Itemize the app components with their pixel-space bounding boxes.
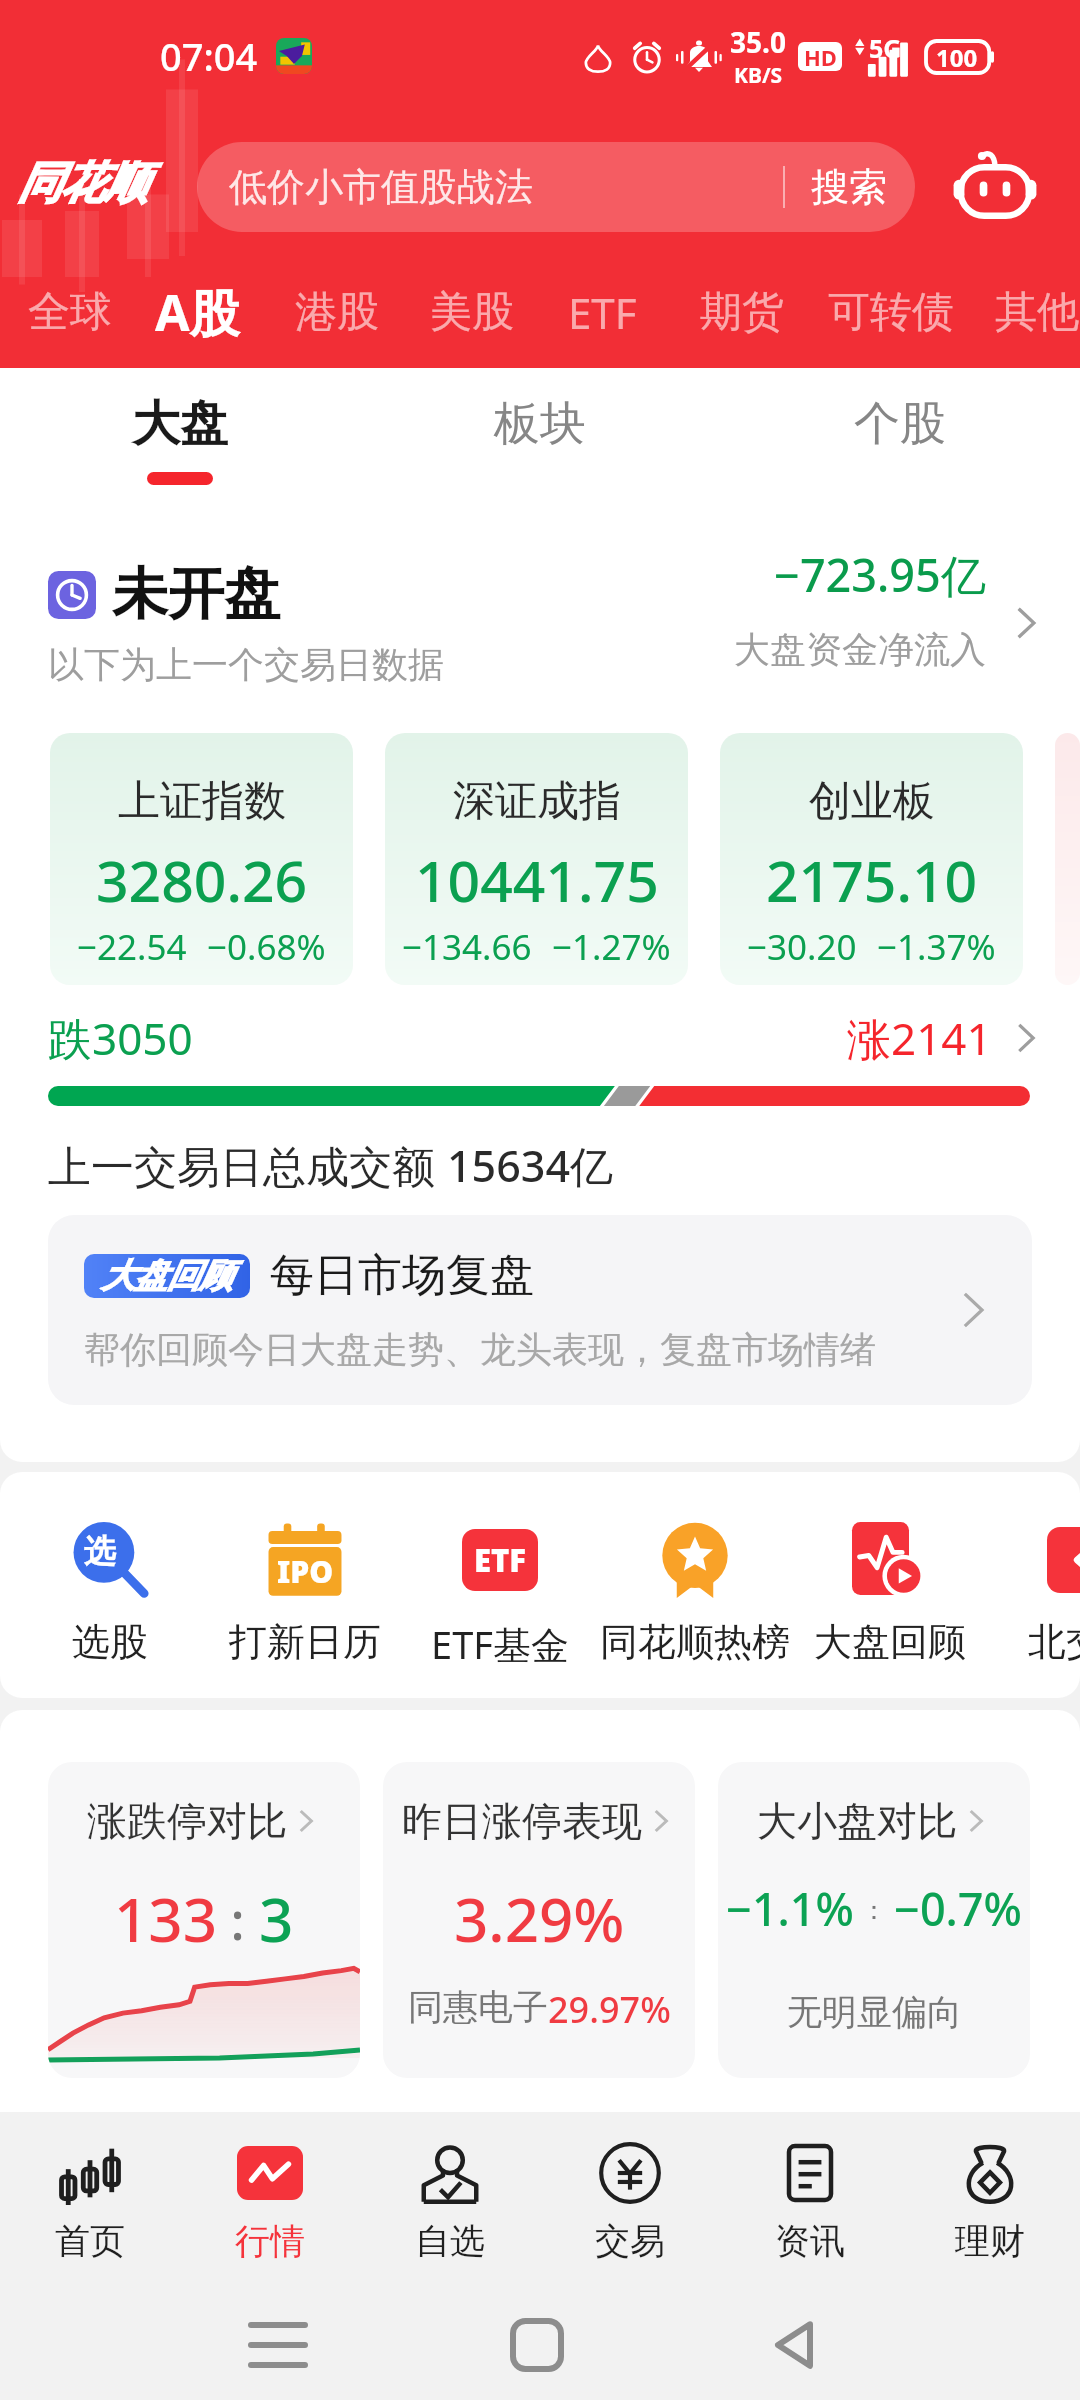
- staticText: 2175.10: [766, 841, 978, 919]
- staticText: 以下为上一个交易日数据: [48, 642, 444, 687]
- staticText: −1.37%: [877, 923, 996, 971]
- staticText: 港股: [295, 286, 379, 339]
- staticText: 同花顺热榜: [600, 1618, 790, 1666]
- staticText: 无明显偏向: [787, 1990, 962, 2034]
- button[interactable]: 低价小市值股战法: [197, 142, 915, 232]
- button[interactable]: 期货: [684, 262, 800, 362]
- button[interactable]: ETF: [390, 1472, 610, 1698]
- button[interactable]: Home: [492, 2300, 582, 2390]
- button[interactable]: AI assistant: [950, 142, 1040, 232]
- staticText: ：: [854, 1891, 894, 1927]
- staticText: 10441.75: [415, 841, 659, 919]
- staticText: 3280.26: [96, 841, 308, 919]
- button[interactable]: IPO: [195, 1472, 415, 1698]
- staticText: −30.20: [747, 923, 857, 971]
- staticText: 搜索: [811, 163, 887, 211]
- staticText: −0.7%: [894, 1878, 1022, 1939]
- staticText: 涨跌停对比: [87, 1796, 287, 1846]
- staticText: 跌3050: [48, 1008, 193, 1068]
- staticText: −134.66: [402, 923, 532, 971]
- staticText: A股: [155, 278, 240, 346]
- button[interactable]: 首页: [0, 2112, 180, 2287]
- staticText: 涨2141: [847, 1008, 992, 1068]
- staticText: 07:04: [160, 30, 258, 82]
- button[interactable]: Recents: [233, 2300, 323, 2390]
- button[interactable]: ETF: [552, 262, 653, 362]
- staticText: 交易: [595, 2219, 665, 2263]
- staticText: −1.1%: [726, 1878, 854, 1939]
- staticText: 理财: [955, 2219, 1025, 2263]
- button[interactable]: 跌3050: [48, 1008, 1046, 1106]
- button[interactable]: 全球: [12, 262, 128, 362]
- button[interactable]: 可转债: [812, 262, 970, 362]
- staticText: 大盘资金净流入: [734, 627, 986, 672]
- button[interactable]: 同花顺热榜: [585, 1472, 805, 1698]
- staticText: 可转债: [828, 286, 954, 339]
- button[interactable]: 北交所: [975, 1472, 1080, 1698]
- staticText: 选: [84, 1531, 116, 1571]
- staticText: 资讯: [775, 2219, 845, 2263]
- staticText: 133: [114, 1878, 217, 1960]
- staticText: ETF: [474, 1539, 527, 1581]
- button[interactable]: 自选: [360, 2112, 540, 2287]
- button[interactable]: 板块: [360, 368, 720, 498]
- button[interactable]: 大盘回顾: [780, 1472, 1000, 1698]
- staticText: ETF: [568, 284, 637, 341]
- staticText: 大盘回顾: [814, 1618, 966, 1666]
- staticText: 打新日历: [229, 1618, 381, 1666]
- staticText: HD: [804, 42, 837, 71]
- button[interactable]: Back: [750, 2300, 840, 2390]
- staticText: 美股: [430, 286, 514, 339]
- staticText: 行情: [235, 2219, 305, 2263]
- staticText: 上一交易日总成交额: [48, 1136, 447, 1195]
- staticText: 自选: [415, 2219, 485, 2263]
- staticText: 3: [259, 1878, 294, 1960]
- button[interactable]: 昨日涨停表现: [383, 1762, 695, 2078]
- button[interactable]: 涨跌停对比: [48, 1762, 360, 2078]
- staticText: 板块: [494, 395, 586, 453]
- staticText: −22.54: [77, 923, 187, 971]
- button[interactable]: 美股: [414, 262, 530, 362]
- button[interactable]: 其他: [979, 262, 1080, 362]
- button[interactable]: 未开盘: [48, 548, 1048, 698]
- staticText: 15634亿: [447, 1136, 613, 1195]
- staticText: 选股: [72, 1618, 148, 1666]
- staticText: IPO: [277, 1551, 334, 1592]
- button[interactable]: A股: [139, 262, 256, 362]
- button[interactable]: 选: [0, 1472, 220, 1698]
- button[interactable]: 资讯: [720, 2112, 900, 2287]
- button[interactable]: 大盘回顾: [48, 1215, 1032, 1405]
- staticText: 同花顺: [18, 156, 147, 211]
- button[interactable]: 行情: [180, 2112, 360, 2287]
- staticText: 29.97%: [548, 1985, 671, 2034]
- staticText: 大盘回顾: [102, 1255, 232, 1297]
- staticText: 3.29%: [454, 1878, 625, 1960]
- staticText: 未开盘: [112, 559, 280, 630]
- staticText: 其他: [995, 286, 1079, 339]
- staticText: KB/S: [734, 61, 783, 90]
- staticText: 首页: [55, 2219, 125, 2263]
- button[interactable]: 港股: [279, 262, 395, 362]
- staticText: 5G: [869, 31, 902, 65]
- staticText: 100: [936, 41, 978, 73]
- button[interactable]: 创业板: [720, 733, 1023, 985]
- staticText: 帮你回顾今日大盘走势、龙头表现，复盘市场情绪: [84, 1327, 876, 1372]
- staticText: 全球: [28, 286, 112, 339]
- button[interactable]: 深证成指: [385, 733, 688, 985]
- staticText: 北交所: [1028, 1618, 1080, 1666]
- staticText: −1.27%: [552, 923, 671, 971]
- staticText: :: [217, 1884, 259, 1955]
- button[interactable]: 交易: [540, 2112, 720, 2287]
- staticText: 期货: [700, 286, 784, 339]
- staticText: 上证指数: [118, 775, 286, 828]
- button[interactable]: 大盘: [0, 368, 360, 498]
- staticText: 低价小市值股战法: [229, 163, 533, 211]
- staticText: 每日市场复盘: [270, 1248, 534, 1303]
- button[interactable]: 个股: [720, 368, 1080, 498]
- staticText: 同惠电子: [408, 1985, 548, 2029]
- button[interactable]: 理财: [900, 2112, 1080, 2287]
- button[interactable]: 大小盘对比: [718, 1762, 1030, 2078]
- staticText: −0.68%: [207, 923, 326, 971]
- staticText: 大小盘对比: [757, 1796, 957, 1846]
- button[interactable]: 上证指数: [50, 733, 353, 985]
